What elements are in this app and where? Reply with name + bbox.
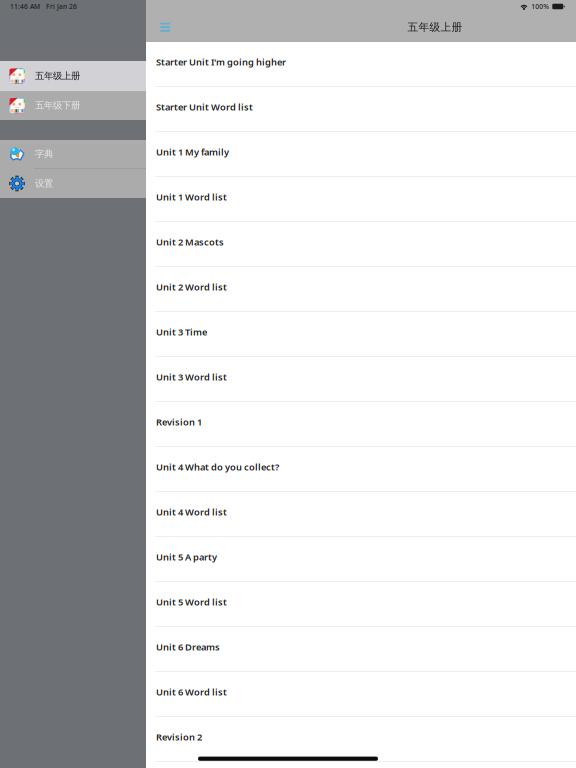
staticText: Unit 2 Word list [156, 281, 227, 293]
staticText: Starter Unit Word list [156, 101, 253, 113]
staticText: 五年级上册 [407, 21, 462, 34]
button[interactable]: Unit 2 Word list [146, 267, 576, 312]
button[interactable]: Revision 2 [146, 717, 576, 762]
button[interactable]: Show sidebar [153, 18, 177, 36]
staticText: 100% [531, 2, 549, 11]
button[interactable]: Unit 1 My family [146, 132, 576, 177]
button[interactable]: Unit 6 Word list [146, 672, 576, 717]
staticText: Unit 1 Word list [156, 191, 227, 203]
button[interactable]: Unit 6 Dreams [146, 627, 576, 672]
staticText: Revision 2 [156, 731, 202, 743]
staticText: 五年级下册 [35, 100, 80, 111]
staticText: Unit 1 My family [156, 146, 229, 158]
button[interactable]: Revision 1 [146, 402, 576, 447]
staticText: Fri Jan 26 [46, 2, 77, 11]
button[interactable]: 字典 [0, 140, 146, 168]
button[interactable]: Starter Unit I'm going higher [146, 42, 576, 87]
button[interactable]: Starter Unit Word list [146, 87, 576, 132]
button[interactable]: Unit 5 A party [146, 537, 576, 582]
staticText: Unit 2 Mascots [156, 236, 224, 248]
button[interactable]: Unit 1 Word list [146, 177, 576, 222]
button[interactable]: Unit 3 Word list [146, 357, 576, 402]
staticText: Revision 1 [156, 416, 202, 428]
button[interactable]: 设置 [0, 169, 146, 198]
button[interactable]: Unit 4 Word list [146, 492, 576, 537]
staticText: 设置 [35, 178, 53, 189]
staticText: Unit 6 Dreams [156, 641, 220, 653]
staticText: Unit 6 Word list [156, 686, 227, 698]
staticText: 11:46 AM [10, 2, 40, 11]
button[interactable]: Unit 2 Mascots [146, 222, 576, 267]
staticText: Unit 5 A party [156, 551, 217, 563]
button[interactable]: Unit 4 What do you collect? [146, 447, 576, 492]
staticText: Unit 3 Time [156, 326, 207, 338]
staticText: Unit 4 What do you collect? [156, 461, 279, 473]
button[interactable]: 五年级上册 [0, 61, 146, 91]
button[interactable]: Unit 5 Word list [146, 582, 576, 627]
staticText: Starter Unit I'm going higher [156, 56, 286, 68]
button[interactable]: Unit 3 Time [146, 312, 576, 357]
staticText: Unit 4 Word list [156, 506, 227, 518]
staticText: Unit 3 Word list [156, 371, 227, 383]
staticText: 五年级上册 [35, 70, 80, 82]
staticText: Unit 5 Word list [156, 596, 227, 608]
staticText: 字典 [35, 148, 53, 160]
button[interactable]: 五年级下册 [0, 91, 146, 120]
